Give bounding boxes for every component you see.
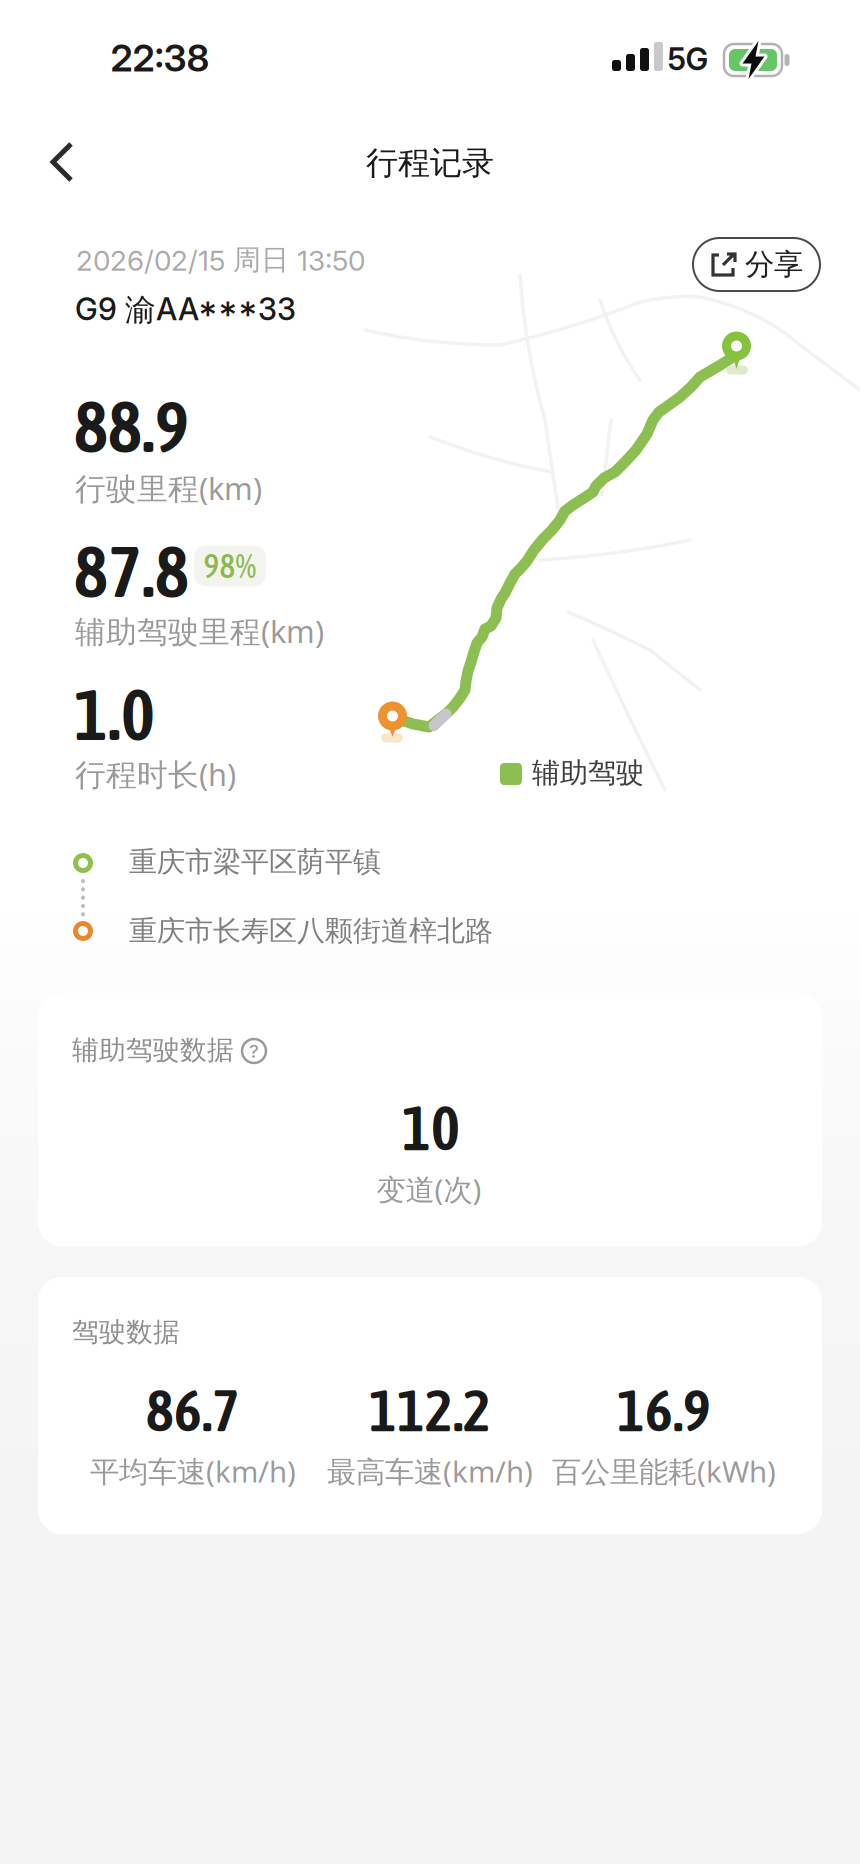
staticText: 5G bbox=[667, 40, 708, 77]
staticText: 分享 bbox=[745, 246, 803, 282]
staticText: 行程记录 bbox=[366, 143, 494, 183]
staticText: 变道(次) bbox=[376, 1169, 481, 1208]
staticText: 辅助驾驶数据 bbox=[72, 1034, 234, 1066]
staticText: 百公里能耗(kWh) bbox=[552, 1451, 776, 1490]
staticText: 2026/02/15 周日 13:50 bbox=[76, 242, 365, 278]
staticText: 22:38 bbox=[110, 35, 209, 81]
staticText: 重庆市长寿区八颗街道梓北路 bbox=[129, 914, 493, 948]
staticText: 驾驶数据 bbox=[72, 1316, 180, 1348]
staticText: 86.7 bbox=[146, 1376, 240, 1444]
button[interactable]: ? bbox=[237, 1034, 271, 1068]
staticText: 辅助驾驶 bbox=[532, 756, 644, 790]
staticText: 10 bbox=[402, 1093, 460, 1163]
staticText: 平均车速(km/h) bbox=[90, 1451, 296, 1490]
staticText: 行驶里程(km) bbox=[75, 468, 262, 508]
staticText: 重庆市梁平区荫平镇 bbox=[129, 845, 381, 879]
staticText: G9 渝AA***33 bbox=[75, 291, 296, 329]
button[interactable]: 分享 bbox=[693, 238, 820, 291]
staticText: 98% bbox=[203, 547, 256, 585]
staticText: 最高车速(km/h) bbox=[327, 1451, 533, 1490]
staticText: 辅助驾驶里程(km) bbox=[75, 611, 324, 651]
staticText: ? bbox=[249, 1040, 259, 1062]
staticText: 112.2 bbox=[369, 1376, 491, 1444]
button[interactable] bbox=[40, 140, 84, 184]
staticText: 1.0 bbox=[74, 673, 155, 755]
staticText: 88.9 bbox=[74, 385, 189, 467]
staticText: 16.9 bbox=[617, 1376, 711, 1444]
staticText: 87.8 bbox=[74, 530, 189, 612]
staticText: 行程时长(h) bbox=[75, 754, 236, 794]
